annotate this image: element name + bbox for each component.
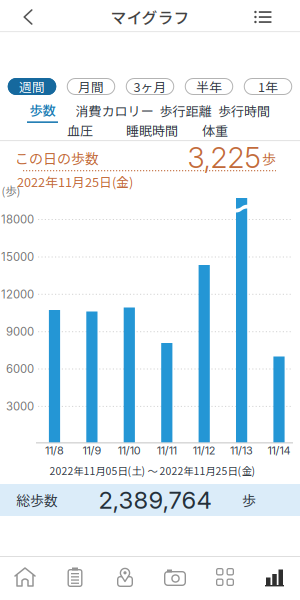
staticText: (歩) — [1, 182, 20, 199]
staticText: 3ヶ月 — [133, 77, 166, 96]
staticText: 11/9 — [82, 444, 101, 457]
button[interactable]: 週間 — [8, 78, 56, 95]
staticText: 歩 — [262, 148, 276, 169]
button[interactable]: 消費カロリー — [75, 101, 153, 120]
staticText: 11/10 — [118, 444, 141, 457]
staticText: この日の歩数 — [15, 148, 99, 168]
button[interactable]: 半年 — [185, 78, 233, 95]
button[interactable]: List — [254, 11, 272, 23]
button[interactable]: 睡眠時間 — [126, 120, 178, 139]
button[interactable]: Graphs — [265, 568, 285, 586]
button[interactable]: 1年 — [244, 78, 292, 95]
button[interactable]: Home — [14, 567, 36, 587]
staticText: 2022年11月25日(金) — [17, 172, 133, 191]
button[interactable]: Camera — [164, 569, 186, 586]
staticText: 11/12 — [193, 444, 216, 457]
staticText: 11/13 — [230, 444, 253, 457]
staticText: 歩行時間 — [218, 101, 270, 120]
staticText: 9000 — [6, 325, 34, 338]
staticText: 18000 — [1, 213, 34, 226]
staticText: 歩行距離 — [159, 101, 211, 120]
staticText: 12000 — [1, 287, 34, 301]
staticText: 11/14 — [267, 444, 290, 457]
staticText: 2022年11月05日(土) ～ 2022年11月25日(金) — [49, 463, 255, 478]
button[interactable]: 血圧 — [67, 120, 93, 139]
button[interactable]: 歩行時間 — [218, 101, 270, 120]
staticText: 歩数 — [29, 100, 55, 119]
staticText: 月間 — [78, 77, 104, 96]
button[interactable]: 歩数 — [27, 100, 58, 123]
button[interactable]: 体重 — [202, 120, 228, 139]
staticText: 睡眠時間 — [126, 120, 178, 139]
button[interactable]: 3ヶ月 — [126, 78, 174, 95]
button[interactable]: 月間 — [67, 78, 115, 95]
staticText: マイグラフ — [110, 6, 189, 28]
staticText: 11/8 — [45, 444, 64, 457]
staticText: 6000 — [6, 362, 34, 376]
staticText: 3000 — [6, 399, 34, 413]
staticText: 消費カロリー — [75, 101, 153, 120]
staticText: 半年 — [196, 77, 222, 96]
staticText: 3,225 — [187, 140, 260, 175]
button[interactable]: 歩行距離 — [159, 101, 211, 120]
staticText: 体重 — [202, 120, 228, 139]
staticText: 血圧 — [67, 120, 93, 139]
button[interactable]: Records — [67, 567, 83, 587]
staticText: 11/11 — [157, 444, 177, 457]
staticText: 1年 — [258, 77, 278, 96]
staticText: 歩 — [242, 490, 256, 510]
button[interactable]: Back — [23, 9, 33, 24]
staticText: 15000 — [1, 250, 34, 264]
button[interactable]: Map — [116, 567, 134, 587]
staticText: 2,389,764 — [98, 485, 211, 514]
staticText: 総歩数 — [16, 490, 58, 510]
staticText: 週間 — [19, 77, 45, 96]
button[interactable]: Menu — [216, 568, 234, 586]
